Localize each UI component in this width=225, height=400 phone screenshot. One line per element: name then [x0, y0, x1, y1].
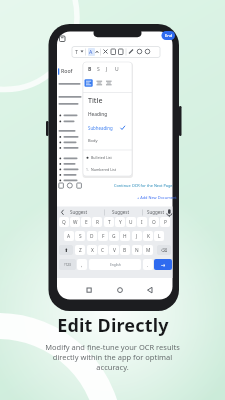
staticText: S [97, 66, 100, 73]
staticText: D [90, 233, 94, 240]
button[interactable]: V [109, 245, 119, 255]
staticText: ⌫ [161, 248, 168, 253]
staticText: . [147, 262, 149, 268]
staticText: Suggest [70, 209, 88, 215]
button[interactable]: Q [59, 217, 69, 227]
button[interactable]: U [126, 217, 136, 227]
staticText: ⬆ [64, 247, 69, 253]
staticText: G [112, 233, 116, 240]
staticText: V [113, 247, 116, 254]
button[interactable]: C [98, 245, 108, 255]
staticText: H [123, 233, 127, 240]
button[interactable]: ⌫ [157, 245, 171, 255]
staticText: N [135, 247, 139, 254]
staticText: ?123 [64, 263, 71, 267]
staticText: M [146, 247, 151, 254]
staticText: Title [88, 96, 103, 106]
staticText: C [101, 247, 105, 254]
staticText: , [81, 262, 83, 268]
button[interactable]: End [162, 31, 176, 40]
staticText: J [136, 233, 138, 240]
button[interactable]: R [92, 217, 102, 227]
staticText: Z [79, 247, 82, 254]
staticText: P [164, 219, 167, 226]
staticText: B [123, 247, 127, 254]
staticText: E [85, 219, 88, 226]
staticText: W [73, 219, 78, 226]
button[interactable]: J [132, 231, 142, 241]
staticText: I [141, 219, 143, 226]
staticText: → [161, 262, 166, 268]
button[interactable]: ⬆ [59, 245, 73, 255]
staticText: Q [62, 219, 66, 226]
button[interactable]: K [143, 231, 153, 241]
staticText: U [115, 66, 119, 73]
button[interactable]: B [120, 245, 130, 255]
button[interactable]: O [149, 217, 159, 227]
staticText: Numbered List [91, 167, 116, 172]
staticText: A [67, 233, 71, 240]
staticText: Edit Directly [57, 313, 169, 338]
staticText: Suggest [147, 209, 165, 215]
staticText: Subheading [88, 125, 113, 131]
button[interactable]: W [70, 217, 80, 227]
staticText: K [147, 233, 150, 240]
button[interactable]: , [77, 259, 87, 270]
button[interactable]: L [154, 231, 164, 241]
staticText: Continue OCR for the Next Page [114, 183, 173, 188]
staticText: Roof [61, 67, 73, 74]
button[interactable]: I [137, 217, 147, 227]
button[interactable]: D [87, 231, 97, 241]
staticText: L [158, 233, 161, 240]
staticText: 1. [86, 167, 89, 172]
button[interactable]: T [104, 217, 114, 227]
button[interactable]: English [89, 259, 141, 270]
staticText: X [91, 247, 94, 254]
button[interactable]: ?123 [59, 259, 76, 270]
button[interactable]: M [143, 245, 153, 255]
staticText: A [89, 48, 93, 55]
staticText: U [129, 219, 133, 226]
button[interactable]: P [160, 217, 170, 227]
button[interactable]: → [154, 259, 172, 270]
button[interactable]: A [64, 231, 74, 241]
staticText: R [96, 219, 99, 226]
button[interactable]: S [75, 231, 85, 241]
staticText: English [110, 263, 121, 267]
button[interactable]: E [81, 217, 91, 227]
button[interactable]: N [132, 245, 142, 255]
staticText: Y [119, 219, 122, 226]
staticText: J [106, 66, 108, 73]
staticText: O [152, 219, 156, 226]
button[interactable]: H [120, 231, 130, 241]
button[interactable]: . [143, 259, 153, 270]
staticText: S [79, 233, 82, 240]
staticText: + Add New Document [137, 195, 177, 200]
staticText: Body [88, 138, 98, 143]
button[interactable]: X [87, 245, 97, 255]
staticText: Heading [88, 111, 108, 118]
staticText: Suggest [112, 209, 130, 215]
button[interactable]: Z [75, 245, 85, 255]
staticText: T [108, 219, 111, 226]
staticText: Bulleted List [91, 155, 112, 160]
staticText: F [102, 233, 105, 240]
button[interactable]: F [98, 231, 108, 241]
button[interactable]: G [109, 231, 119, 241]
staticText: B [88, 66, 92, 73]
staticText: T [75, 48, 79, 55]
staticText: End [165, 33, 173, 38]
button[interactable]: Y [115, 217, 125, 227]
staticText: Modify and fine-tune your OCR results di… [45, 342, 180, 372]
